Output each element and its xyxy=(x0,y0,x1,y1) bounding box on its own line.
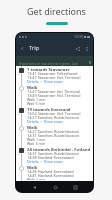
button[interactable]: Back xyxy=(31,184,37,190)
staticText: 13:47 Stavanger Hpl. Terminal xyxy=(27,75,81,79)
staticText: Wait 5 min xyxy=(27,101,45,105)
staticText: 14:31 Sandnes Rutebilstasjon xyxy=(27,133,80,137)
button[interactable]: Get directions xyxy=(0,0,112,21)
staticText: 24 towards Byrkjedal - Fotland xyxy=(27,147,91,151)
staticText: 14:27 Sandnes Rutebilstasjon xyxy=(27,129,80,133)
button[interactable]: Walk xyxy=(16,164,93,181)
staticText: Details • Show stops xyxy=(27,119,63,123)
staticText: 13:35 xyxy=(74,34,83,39)
staticText: Details • Show stops xyxy=(27,79,63,83)
button[interactable]: More options xyxy=(82,44,91,53)
button[interactable]: Departures in real time are given, Last … xyxy=(16,56,93,66)
staticText: 1 towards Stavanger xyxy=(27,67,70,71)
button[interactable]: Home xyxy=(52,184,58,190)
staticText: 14:31 Sandnes Rutebilstasjon xyxy=(27,151,80,155)
staticText: Walk xyxy=(27,165,38,169)
staticText: 14:27 Sandnes Rutebilstasjon xyxy=(27,115,80,119)
staticText: Wait 3 min xyxy=(27,141,45,145)
staticText: Walk xyxy=(27,85,38,89)
staticText: 14:38 Høyland Kvernaland xyxy=(27,155,74,159)
staticText: Details • Show stops xyxy=(27,159,63,163)
staticText: Walk xyxy=(27,125,38,129)
staticText: Trip xyxy=(29,44,40,52)
staticText: 19 towards Egersund xyxy=(27,107,71,111)
staticText: 13:47 Stavanger hpl. Terminal xyxy=(27,89,80,93)
staticText: Departures in real time are given, Last … xyxy=(19,61,90,65)
button[interactable]: 19 towards Egersund xyxy=(16,106,93,124)
button[interactable]: Back xyxy=(18,44,27,53)
button[interactable]: Walk xyxy=(16,84,93,106)
staticText: Walk 1 min xyxy=(27,177,46,180)
staticText: Walk 1 min xyxy=(27,137,46,141)
staticText: 13:41 Stavanger Fylkeshuset xyxy=(27,71,78,75)
staticText: Get directions xyxy=(27,5,86,17)
staticText: 14:38 Høyland Kvernaland xyxy=(27,169,74,173)
button[interactable]: Walk xyxy=(16,124,93,146)
button[interactable]: 1 towards Stavanger xyxy=(16,66,93,84)
staticText: Walk 1 min xyxy=(27,97,46,101)
button[interactable]: 24 towards Byrkjedal - Fotland xyxy=(16,146,93,164)
staticText: 13:49 Stavanger Hpl. Terminal xyxy=(27,93,81,97)
button[interactable]: Share xyxy=(73,44,82,53)
staticText: 13:54 Stavanger Hpl. Terminal xyxy=(27,111,81,115)
button[interactable]: Recent apps xyxy=(72,184,78,190)
staticText: 14:41 Høyland Kvernaland xyxy=(27,173,74,177)
